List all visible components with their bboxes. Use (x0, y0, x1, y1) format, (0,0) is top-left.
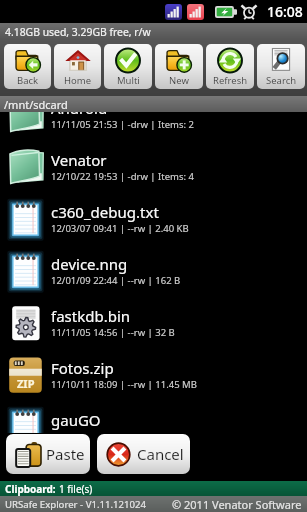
staticText: 12/01/09 22:44 | --rw | 162 B (51, 274, 181, 287)
staticText: 4.18GB used, 3.29GB free, r/w (5, 25, 151, 39)
staticText: 1 file(s) (59, 482, 93, 496)
button[interactable]: Multi select (104, 44, 152, 89)
staticText: Search (266, 74, 297, 87)
button[interactable]: ZIP (0, 348, 307, 400)
button[interactable]: Paste (6, 434, 90, 474)
staticText: device.nng (51, 254, 128, 274)
button[interactable]: device.nng (0, 244, 307, 296)
button[interactable]: gauGO (0, 400, 307, 433)
staticText: Android (51, 112, 108, 118)
button[interactable]: fastkdb.bin (0, 296, 307, 348)
staticText: Refresh (213, 74, 248, 87)
staticText: gauGO (51, 410, 101, 430)
button[interactable]: Venator (0, 140, 307, 192)
staticText: Cancel (137, 444, 184, 464)
button[interactable]: Back (4, 44, 51, 89)
staticText: /mnt/sdcard (4, 97, 68, 112)
staticText: Back (17, 74, 39, 87)
button[interactable]: Search (257, 44, 305, 89)
staticText: ZIP (17, 376, 35, 391)
staticText: Clipboard: (5, 482, 56, 496)
button[interactable]: Cancel (97, 434, 190, 474)
staticText: 12/03/07 09:41 | --rw | 2.40 KB (51, 222, 189, 235)
staticText: c360_debug.txt (51, 202, 159, 222)
button[interactable]: New folder (155, 44, 203, 89)
staticText: 11/11/05 14:56 | --rw | 32 B (51, 326, 175, 339)
staticText: 16:08 (267, 2, 303, 21)
staticText: Paste (46, 444, 85, 464)
staticText: 11/10/11 18:09 | --rw | 11.45 MB (51, 378, 197, 391)
staticText: Venator (51, 150, 107, 170)
staticText: Multi (117, 74, 140, 87)
button[interactable]: Refresh (206, 44, 254, 89)
button[interactable]: Android (0, 112, 307, 140)
staticText: fastkdb.bin (51, 306, 131, 326)
staticText: New (169, 74, 189, 87)
staticText: 12/10/22 19:53 | -drw | Items: 4 (51, 170, 194, 183)
staticText: Home (64, 74, 92, 87)
staticText: Fotos.zip (51, 358, 114, 378)
staticText: 11/11/05 21:53 | -drw | Items: 2 (51, 118, 194, 131)
staticText: © 2011 Venator Software (172, 497, 302, 512)
button[interactable]: c360_debug.txt (0, 192, 307, 244)
button[interactable]: Home (54, 44, 101, 89)
staticText: URSafe Explorer - V1.11.121024 (5, 498, 146, 511)
